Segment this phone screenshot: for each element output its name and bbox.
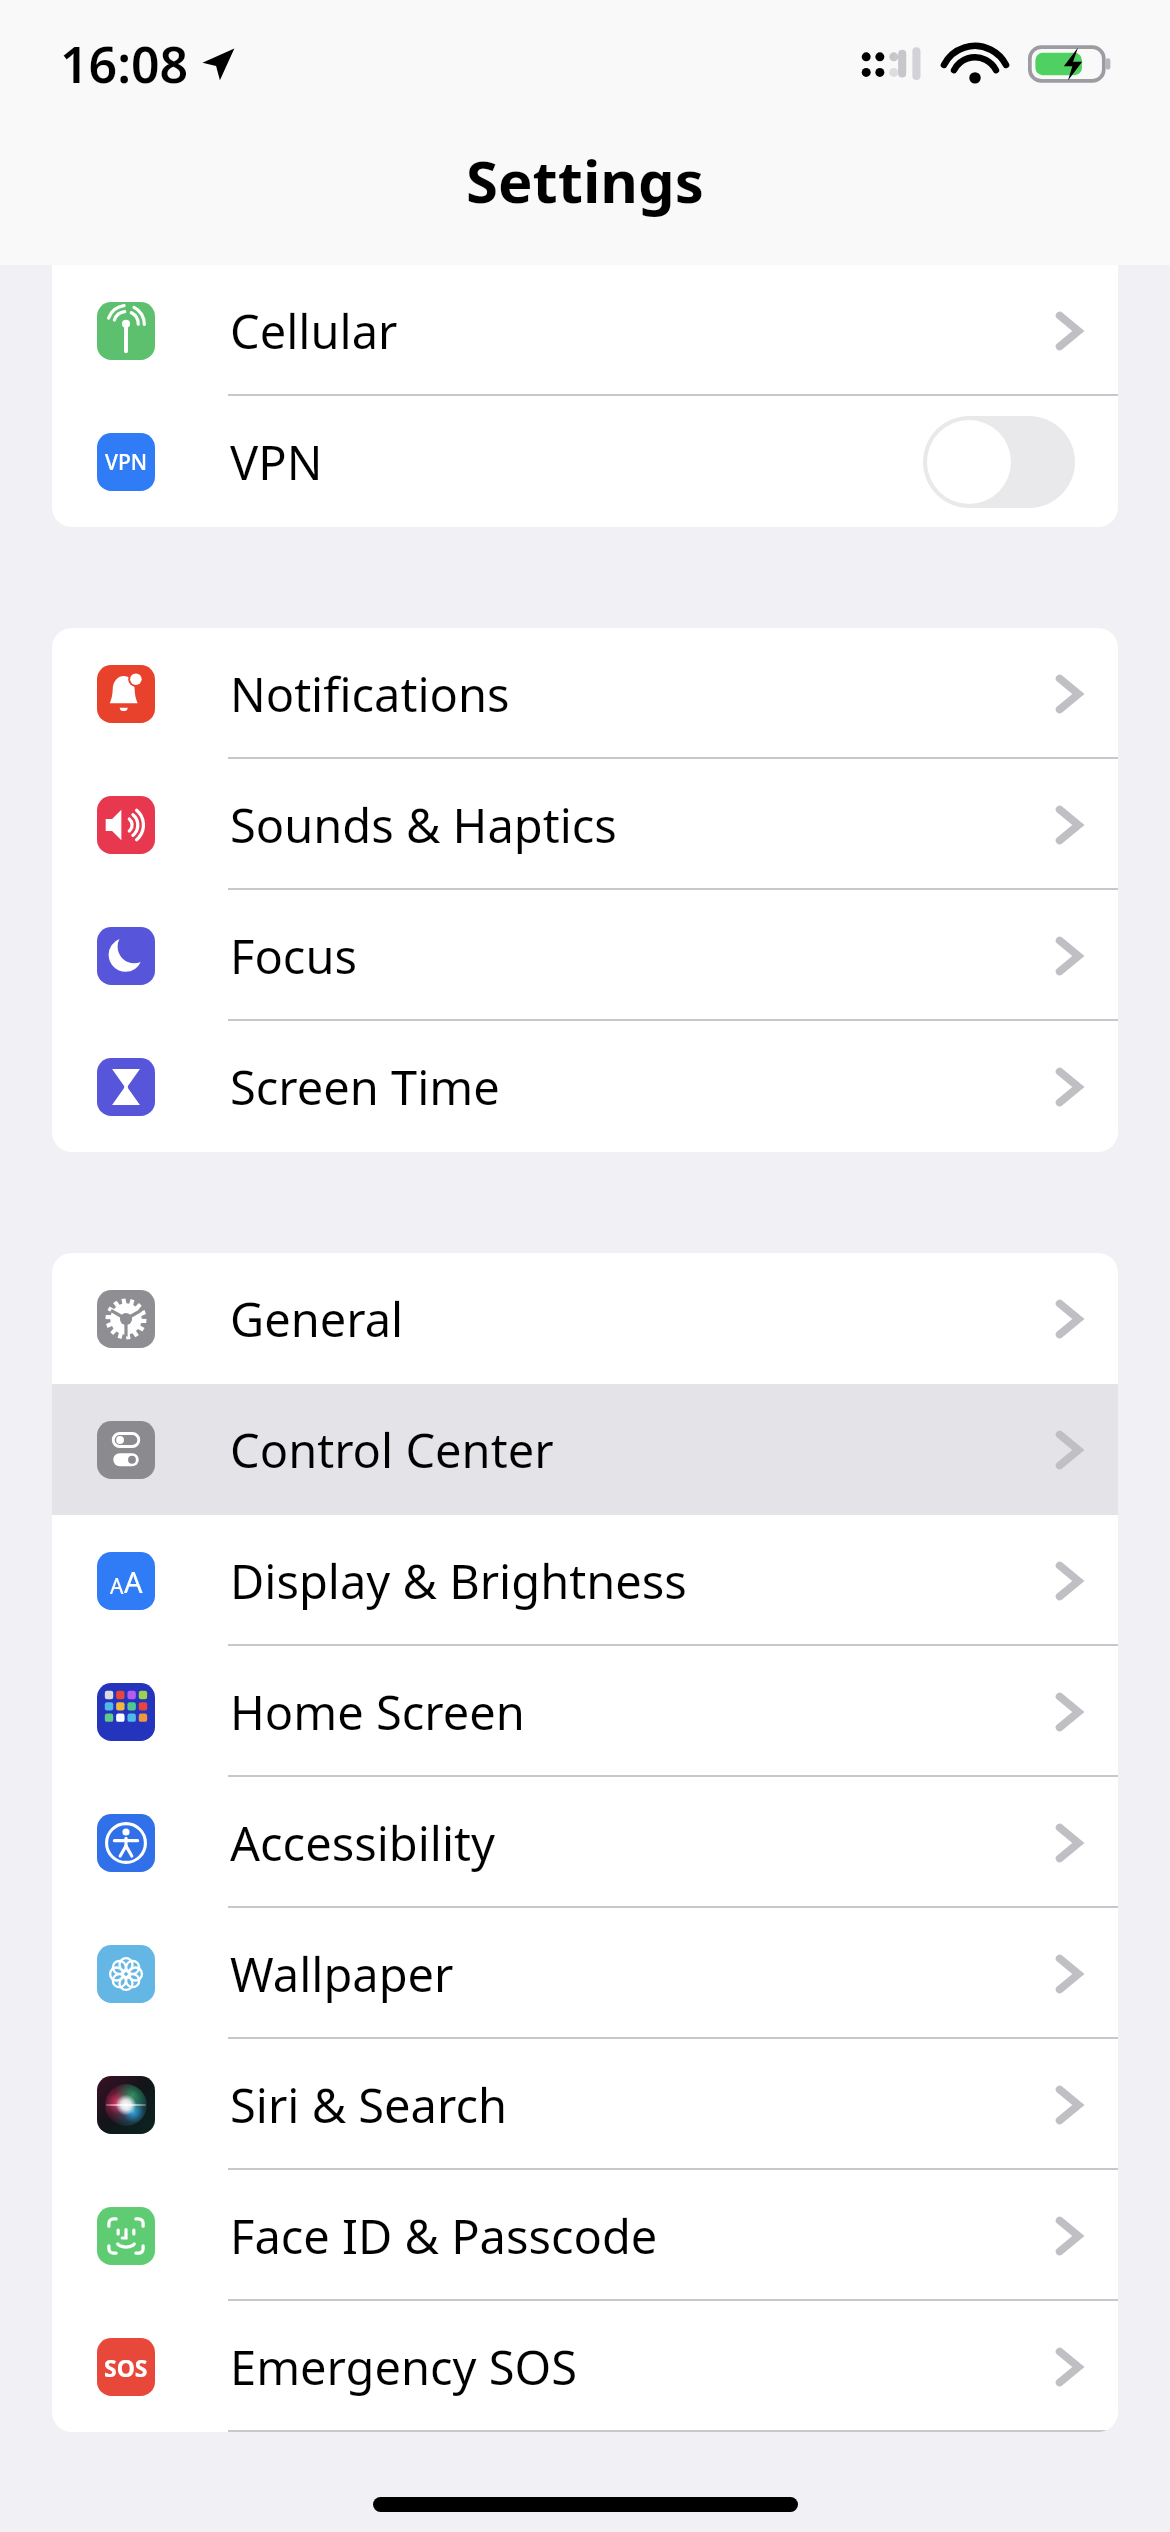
staticText: General bbox=[230, 1287, 404, 1351]
staticText: 16:08 bbox=[60, 30, 189, 98]
staticText: Notifications bbox=[230, 662, 510, 726]
staticText: SOS bbox=[104, 2352, 148, 2383]
staticText: Face ID & Passcode bbox=[230, 2204, 658, 2268]
staticText: Siri & Search bbox=[230, 2073, 508, 2137]
button[interactable]: Home Screen bbox=[52, 1646, 1118, 1777]
button[interactable]: VPN, off bbox=[923, 416, 1075, 508]
staticText: Focus bbox=[230, 924, 357, 988]
button[interactable]: General bbox=[52, 1253, 1118, 1384]
button[interactable]: Cellular bbox=[52, 265, 1118, 396]
staticText: Display & Brightness bbox=[230, 1549, 687, 1613]
staticText: Cellular bbox=[230, 299, 398, 363]
button[interactable]: A bbox=[52, 1515, 1118, 1646]
staticText: Wallpaper bbox=[230, 1942, 454, 2006]
staticText: Screen Time bbox=[230, 1055, 500, 1119]
staticText: Home Screen bbox=[230, 1680, 525, 1744]
button[interactable]: Screen Time bbox=[52, 1021, 1118, 1152]
staticText: Sounds & Haptics bbox=[230, 793, 617, 857]
button[interactable]: Notifications bbox=[52, 628, 1118, 759]
button[interactable]: Sounds & Haptics bbox=[52, 759, 1118, 890]
button[interactable]: Siri & Search bbox=[52, 2039, 1118, 2170]
staticText: Control Center bbox=[230, 1418, 554, 1482]
staticText: Settings bbox=[466, 141, 704, 220]
staticText: Accessibility bbox=[230, 1811, 496, 1875]
staticText: Emergency SOS bbox=[230, 2335, 578, 2399]
staticText: VPN bbox=[105, 448, 148, 477]
button[interactable]: Control Center bbox=[52, 1384, 1118, 1515]
button[interactable]: Accessibility bbox=[52, 1777, 1118, 1908]
button[interactable]: VPN bbox=[52, 396, 1118, 527]
staticText: A bbox=[124, 1562, 143, 1601]
staticText: VPN bbox=[230, 430, 323, 494]
button[interactable]: Wallpaper bbox=[52, 1908, 1118, 2039]
button[interactable]: Focus bbox=[52, 890, 1118, 1021]
button[interactable]: SOS bbox=[52, 2301, 1118, 2432]
staticText: A bbox=[110, 1572, 124, 1601]
button[interactable]: Face ID & Passcode bbox=[52, 2170, 1118, 2301]
button[interactable]: Bluetooth bbox=[52, 134, 1118, 265]
